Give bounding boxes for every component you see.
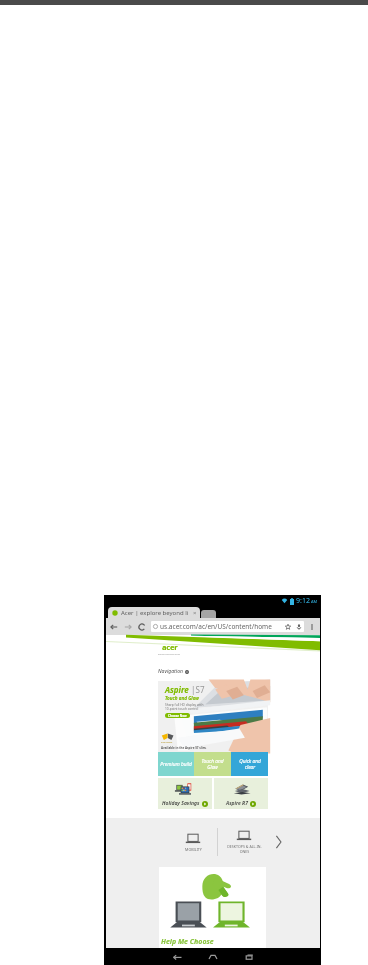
other: Next: [275, 834, 282, 850]
button[interactable]: Quick and clear: [231, 752, 268, 776]
button[interactable]: Aspire R7: [214, 778, 268, 809]
staticText: Sharp full HD display with: [165, 703, 204, 707]
button[interactable]: MOBILITY: [169, 833, 217, 852]
button[interactable]: Navigation: [106, 656, 320, 675]
button[interactable]: Forward: [123, 622, 133, 632]
staticText: Holiday Savings: [162, 800, 200, 807]
staticText: Quick and clear: [239, 758, 261, 770]
button[interactable]: Back: [109, 622, 119, 632]
staticText: acer: [162, 642, 178, 652]
staticText: explore beyond limits: [158, 653, 181, 656]
button[interactable]: Help Me Choose: [159, 867, 266, 948]
staticText: ×: [193, 609, 197, 617]
staticText: Acer | explore beyond li: [121, 609, 189, 617]
button[interactable]: Recent apps: [231, 948, 267, 965]
button[interactable]: Reload: [137, 622, 147, 632]
staticText: Aspire R7: [226, 800, 248, 807]
staticText: MOBILITY: [185, 847, 202, 852]
staticText: DESKTOPS & ALL-IN- ONES: [227, 844, 262, 854]
button[interactable]: Touch and Glow: [194, 752, 231, 776]
staticText: Available in the Aspire S7 slim.: [161, 746, 207, 750]
staticText: Navigation: [158, 668, 183, 675]
button[interactable]: us.acer.com/ac/en/US/content/home: [151, 621, 304, 632]
staticText: |S7: [189, 684, 205, 695]
staticText: Aspire: [165, 684, 189, 695]
staticText: Premium build: [160, 761, 192, 768]
staticText: AM: [311, 599, 318, 604]
staticText: Touch and Glow: [201, 758, 224, 770]
staticText: intel inside: [161, 741, 173, 744]
staticText: Choose Now: [168, 714, 187, 718]
button[interactable]: Choose Now: [165, 713, 190, 718]
staticText: 10-point touch control: [165, 707, 199, 711]
staticText: 9:12: [296, 596, 310, 606]
button[interactable]: Back: [159, 948, 195, 965]
button[interactable]: Acer | explore beyond li: [108, 607, 200, 618]
button[interactable]: DESKTOPS & ALL-IN- ONES: [218, 830, 270, 854]
button[interactable]: 9:12: [104, 595, 321, 965]
button[interactable]: [201, 610, 216, 618]
button[interactable]: Holiday Savings: [158, 778, 212, 809]
button[interactable]: Home: [195, 948, 231, 965]
staticText: Help Me Choose: [161, 937, 214, 947]
staticText: Touch and Glow: [165, 695, 199, 701]
button[interactable]: More options: [307, 622, 317, 632]
button[interactable]: Premium build: [158, 752, 194, 776]
staticText: us.acer.com/ac/en/US/content/home: [160, 622, 272, 631]
